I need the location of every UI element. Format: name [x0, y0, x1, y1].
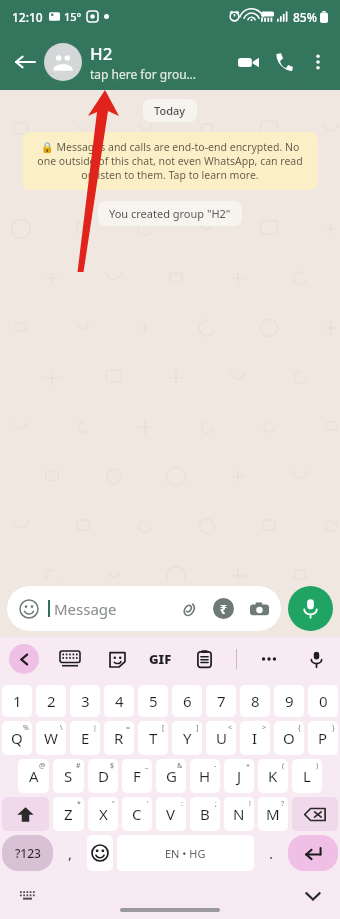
staticText: ]: [196, 723, 199, 733]
staticText: K: [268, 766, 278, 786]
button[interactable]: Video call: [230, 44, 266, 80]
button[interactable]: W: [36, 721, 66, 755]
staticText: T: [149, 728, 158, 748]
button[interactable]: H2: [90, 42, 230, 82]
staticText: !: [249, 799, 251, 809]
button[interactable]: 7: [206, 685, 236, 717]
button[interactable]: .: [258, 835, 284, 871]
staticText: 5: [149, 691, 158, 711]
button[interactable]: I: [240, 721, 270, 755]
button[interactable]: X: [88, 797, 118, 831]
button[interactable]: L: [292, 759, 322, 793]
staticText: 9: [285, 691, 294, 711]
button[interactable]: T: [138, 721, 168, 755]
button[interactable]: 6: [172, 685, 202, 717]
button[interactable]: M: [258, 797, 288, 831]
button[interactable]: 0: [308, 685, 338, 717]
button[interactable]: Keyboard settings: [55, 644, 85, 674]
button[interactable]: Collapse toolbar: [9, 644, 39, 674]
staticText: J: [237, 766, 242, 786]
button[interactable]: 5: [138, 685, 168, 717]
button[interactable]: 8: [240, 685, 270, 717]
button[interactable]: B: [190, 797, 220, 831]
button[interactable]: ,: [57, 835, 83, 871]
button[interactable]: EN • HG: [117, 835, 254, 871]
button[interactable]: Attach: [177, 598, 199, 620]
button[interactable]: 3: [70, 685, 100, 717]
button[interactable]: Voice message: [288, 586, 333, 631]
button[interactable]: Emoji: [18, 598, 40, 620]
button[interactable]: H: [190, 759, 220, 793]
staticText: {: [298, 723, 301, 733]
button[interactable]: Voice call: [266, 44, 302, 80]
button[interactable]: Voice input: [301, 644, 331, 674]
button[interactable]: 4: [104, 685, 134, 717]
button[interactable]: P: [308, 721, 338, 755]
button[interactable]: Emoji: [7, 586, 281, 631]
button[interactable]: You created group "H2": [98, 201, 242, 226]
button[interactable]: K: [258, 759, 288, 793]
button[interactable]: ?123: [2, 835, 53, 871]
staticText: ,: [68, 843, 73, 863]
button[interactable]: Camera: [248, 598, 270, 620]
button[interactable]: Hide keyboard: [14, 883, 40, 909]
staticText: I: [252, 728, 258, 748]
button[interactable]: 2: [36, 685, 66, 717]
button[interactable]: J: [224, 759, 254, 793]
button[interactable]: N: [224, 797, 254, 831]
staticText: |: [93, 723, 97, 733]
staticText: ": [112, 799, 115, 809]
button[interactable]: Today: [143, 99, 197, 122]
staticText: -: [214, 761, 217, 771]
button[interactable]: Shift: [2, 797, 49, 831]
button[interactable]: Z: [53, 797, 84, 831]
staticText: E: [81, 728, 90, 748]
button[interactable]: A: [18, 759, 49, 793]
staticText: N: [233, 804, 245, 824]
staticText: +: [246, 761, 251, 771]
button[interactable]: G: [156, 759, 186, 793]
button[interactable]: 🔒 Messages and calls are end-to-end encr…: [22, 132, 318, 190]
staticText: Message: [54, 599, 117, 619]
button[interactable]: 1: [2, 685, 32, 717]
button[interactable]: V: [156, 797, 186, 831]
button[interactable]: Payment: [213, 598, 234, 619]
button[interactable]: C: [122, 797, 152, 831]
staticText: 4: [115, 691, 124, 711]
button[interactable]: More options: [302, 46, 334, 78]
button[interactable]: S: [53, 759, 84, 793]
button[interactable]: Emoji: [87, 835, 113, 871]
button[interactable]: Y: [172, 721, 202, 755]
button[interactable]: Stickers: [102, 644, 132, 674]
staticText: Y: [183, 728, 192, 748]
button[interactable]: Enter: [288, 835, 338, 871]
staticText: %: [23, 723, 29, 733]
button[interactable]: 9: [274, 685, 304, 717]
staticText: F: [133, 766, 141, 786]
staticText: 🔒 Messages and calls are end-to-end encr…: [35, 140, 305, 182]
button[interactable]: E: [70, 721, 100, 755]
button[interactable]: R: [104, 721, 134, 755]
staticText: EN • HG: [165, 846, 206, 861]
button[interactable]: Q: [2, 721, 32, 755]
button[interactable]: Clipboard: [189, 644, 219, 674]
button[interactable]: More: [254, 644, 284, 674]
button[interactable]: F: [122, 759, 152, 793]
staticText: *: [77, 799, 81, 809]
button[interactable]: U: [206, 721, 236, 755]
button[interactable]: GIF: [149, 644, 172, 674]
button[interactable]: [44, 43, 82, 81]
staticText: 3: [81, 691, 90, 711]
staticText: P: [318, 728, 328, 748]
button[interactable]: O: [274, 721, 304, 755]
staticText: ?: [281, 799, 285, 809]
staticText: L: [303, 766, 311, 786]
button[interactable]: Backspace: [292, 797, 338, 831]
button[interactable]: Back: [8, 45, 42, 79]
staticText: R: [114, 728, 124, 748]
staticText: H2: [90, 42, 113, 65]
button[interactable]: D: [88, 759, 118, 793]
staticText: 8: [251, 691, 260, 711]
button[interactable]: Close keyboard: [300, 883, 326, 909]
staticText: }: [332, 723, 335, 733]
